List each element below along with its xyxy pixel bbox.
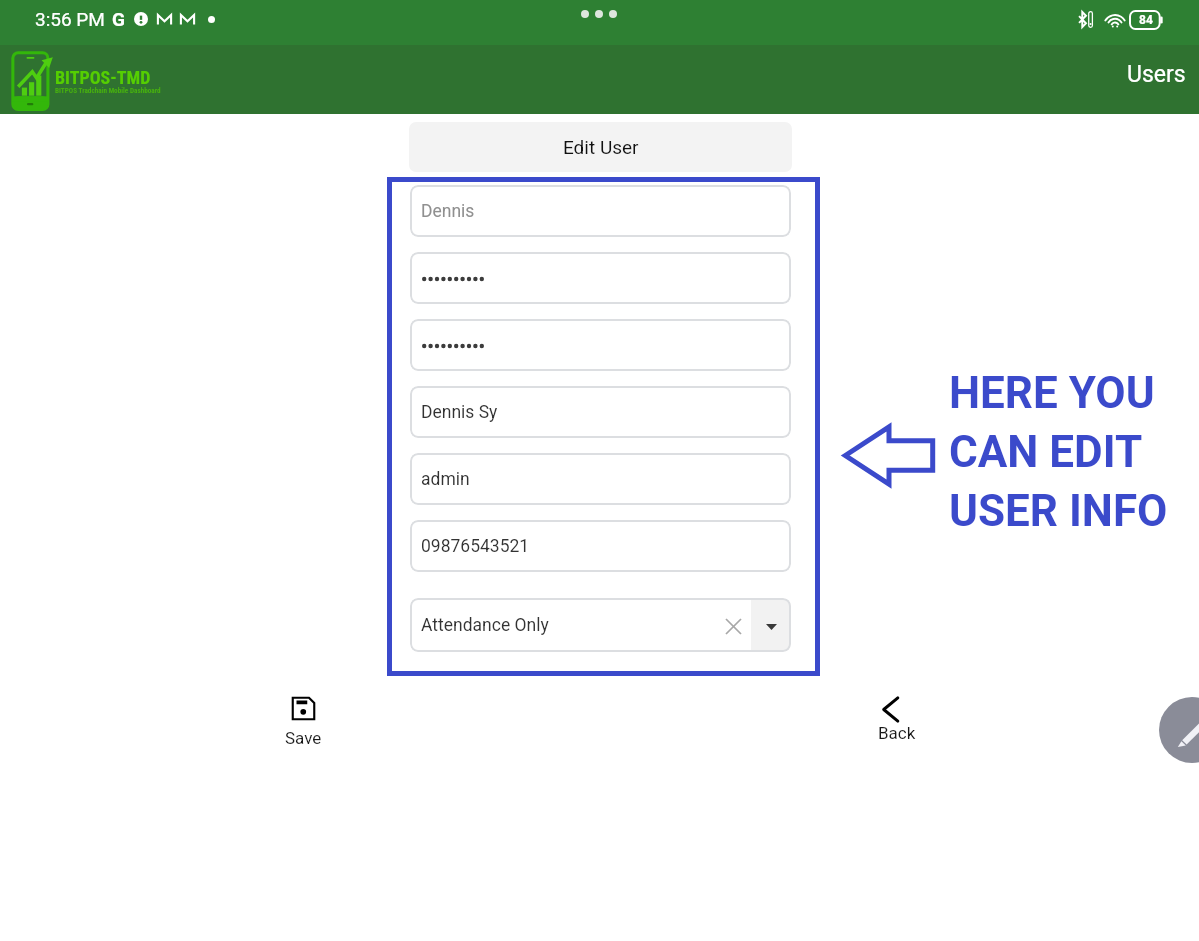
button[interactable]: Edit bbox=[1159, 697, 1199, 763]
staticText: 84 bbox=[1139, 13, 1153, 27]
staticText: Attendance Only bbox=[421, 615, 549, 636]
staticText: BITPOS-TMD bbox=[55, 67, 151, 88]
button[interactable] bbox=[410, 252, 791, 304]
button[interactable]: Clear selection bbox=[718, 611, 748, 641]
staticText: CAN EDIT bbox=[949, 426, 1143, 478]
button[interactable]: Dennis bbox=[410, 185, 791, 237]
button[interactable]: Save bbox=[267, 694, 339, 748]
staticText: 09876543521 bbox=[421, 536, 530, 557]
button[interactable]: Edit User bbox=[409, 122, 792, 172]
staticText: 3:56 PM bbox=[35, 8, 105, 30]
button[interactable]: Dennis Sy bbox=[410, 386, 791, 438]
button[interactable]: Attendance Only bbox=[410, 598, 791, 652]
staticText: USER INFO bbox=[949, 485, 1168, 537]
button[interactable]: admin bbox=[410, 453, 791, 505]
button[interactable]: Open dropdown bbox=[751, 599, 791, 651]
staticText: Save bbox=[285, 728, 322, 748]
button[interactable]: 09876543521 bbox=[410, 520, 791, 572]
staticText: Edit User bbox=[563, 136, 639, 158]
staticText: Dennis Sy bbox=[421, 402, 498, 423]
staticText: G bbox=[112, 8, 125, 30]
staticText: HERE YOU bbox=[949, 367, 1155, 419]
staticText: BITPOS Tradchain Mobile Dashboard bbox=[55, 86, 161, 94]
button[interactable]: Back bbox=[864, 692, 930, 743]
staticText: Dennis bbox=[421, 201, 475, 222]
staticText: Back bbox=[878, 723, 916, 743]
staticText: admin bbox=[421, 469, 470, 490]
staticText: Users bbox=[1127, 61, 1186, 88]
button[interactable] bbox=[410, 319, 791, 371]
